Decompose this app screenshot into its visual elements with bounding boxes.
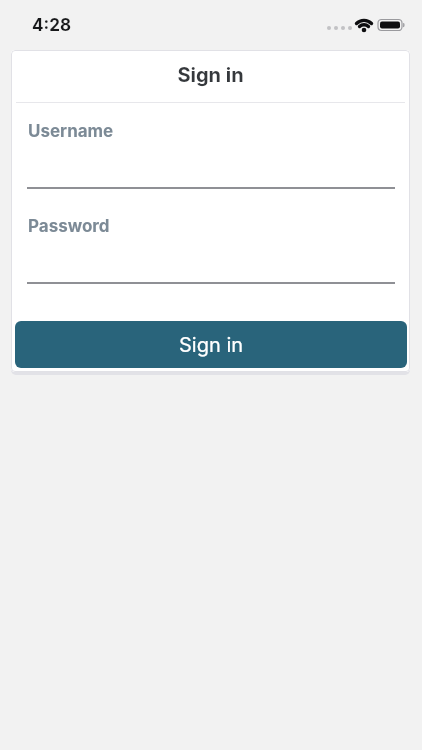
staticText: Sign in xyxy=(179,333,244,357)
staticText: Password xyxy=(28,216,110,237)
button[interactable] xyxy=(27,145,395,189)
button[interactable] xyxy=(27,240,395,284)
staticText: Sign in xyxy=(11,63,410,87)
staticText: Username xyxy=(28,121,114,142)
button[interactable]: Sign in xyxy=(15,321,407,368)
staticText: 4:28 xyxy=(32,15,71,36)
